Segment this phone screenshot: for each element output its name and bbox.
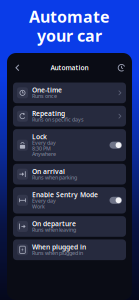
staticText: Repeating — [32, 109, 65, 118]
staticText: When plugged in — [32, 242, 86, 251]
staticText: Anywhere — [32, 150, 56, 158]
staticText: Enable Sentry Mode — [32, 190, 98, 199]
staticText: Runs once — [32, 92, 57, 100]
staticText: Runs when leaving — [32, 226, 76, 233]
staticText: On arrival — [32, 167, 65, 176]
button[interactable]: When plugged in — [13, 239, 126, 260]
staticText: Automate — [29, 6, 110, 27]
staticText: your car — [37, 25, 102, 46]
staticText: Every day — [32, 139, 56, 146]
button[interactable]: Back — [12, 62, 23, 73]
button[interactable]: One-time — [13, 82, 126, 103]
staticText: Lock — [32, 132, 47, 141]
button[interactable]: Lock — [13, 129, 126, 161]
staticText: One-time — [32, 86, 62, 94]
button[interactable]: On arrival — [13, 164, 126, 184]
staticText: Runs when plugged in — [32, 249, 83, 256]
staticText: Runs when parking — [32, 174, 77, 181]
staticText: Runs on specific days — [32, 116, 84, 123]
button[interactable]: Repeating — [13, 106, 126, 126]
staticText: 8:30 PM — [32, 145, 51, 152]
button[interactable]: Enable Sentry Mode — [13, 187, 126, 213]
staticText: Work — [32, 203, 45, 210]
button[interactable]: On departure — [13, 216, 126, 237]
staticText: Automation — [50, 63, 88, 72]
staticText: Every day — [32, 197, 56, 204]
button[interactable]: History — [116, 62, 127, 73]
staticText: On departure — [32, 219, 76, 228]
